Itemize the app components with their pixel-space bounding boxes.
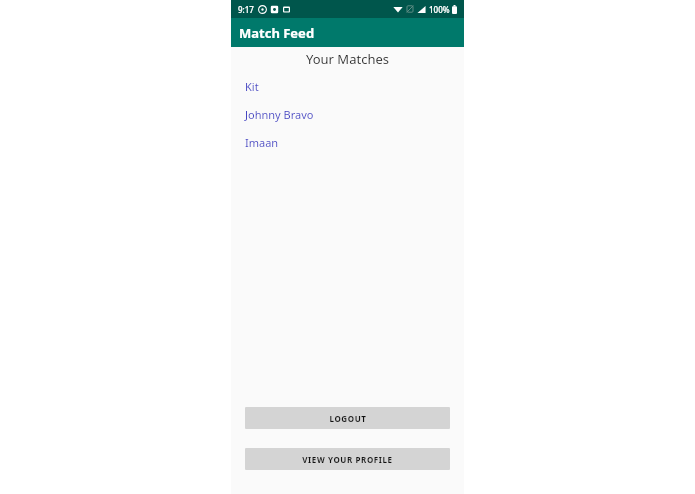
staticText: LOGOUT [329, 413, 367, 424]
staticText: Kit [245, 79, 259, 94]
staticText: Imaan [245, 135, 279, 150]
button[interactable]: Johnny Bravo [231, 107, 464, 122]
button[interactable]: Imaan [231, 135, 464, 150]
staticText: 100% [429, 4, 450, 15]
button[interactable]: LOGOUT [245, 407, 450, 429]
staticText: VIEW YOUR PROFILE [302, 454, 393, 465]
button[interactable]: Kit [231, 79, 464, 94]
staticText: 9:17 [238, 4, 254, 15]
staticText: Your Matches [306, 50, 389, 68]
button[interactable]: VIEW YOUR PROFILE [245, 448, 450, 470]
staticText: Johnny Bravo [245, 107, 314, 122]
staticText: Match Feed [239, 24, 315, 42]
